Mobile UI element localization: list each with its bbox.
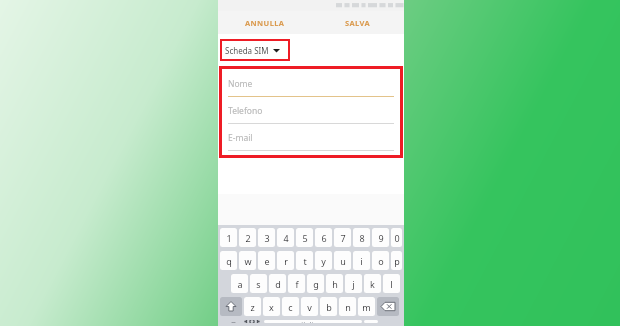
button[interactable]: 3 — [258, 228, 275, 247]
button[interactable]: 2 — [239, 228, 256, 247]
staticText: c — [288, 301, 293, 313]
button[interactable]: Nome — [228, 71, 394, 97]
button[interactable]: r — [277, 251, 294, 270]
staticText: !#☺ — [223, 320, 238, 323]
staticText: p — [394, 255, 400, 267]
staticText: k — [370, 278, 375, 290]
staticText: j — [352, 278, 355, 290]
button[interactable]: ANNULLA — [218, 11, 311, 34]
button[interactable]: 0 — [391, 228, 402, 247]
button[interactable]: d — [269, 274, 286, 293]
button[interactable]: x — [263, 297, 280, 316]
staticText: E-mail — [228, 132, 253, 144]
staticText: 0 — [394, 232, 400, 244]
button[interactable]: n — [339, 297, 356, 316]
staticText: g — [313, 278, 319, 290]
button[interactable]: t — [296, 251, 313, 270]
staticText: italiano — [301, 320, 326, 323]
staticText: z — [250, 301, 255, 313]
staticText: r — [284, 255, 288, 267]
staticText: Telefono — [228, 105, 263, 117]
staticText: f — [295, 278, 299, 290]
button[interactable]: j — [345, 274, 362, 293]
button[interactable]: k — [364, 274, 381, 293]
button[interactable]: o — [372, 251, 389, 270]
button[interactable]: Settings — [242, 320, 262, 323]
button[interactable]: E-mail — [228, 125, 394, 151]
button[interactable]: 9 — [372, 228, 389, 247]
button[interactable]: h — [326, 274, 343, 293]
button[interactable]: 4 — [277, 228, 294, 247]
button[interactable]: 6 — [315, 228, 332, 247]
staticText: Nome — [228, 78, 253, 90]
staticText: 2 — [245, 232, 251, 244]
button[interactable]: Symbols — [220, 320, 240, 323]
staticText: y — [321, 255, 326, 267]
staticText: 8 — [359, 232, 365, 244]
button[interactable]: Shift — [220, 297, 242, 316]
staticText: h — [332, 278, 338, 290]
button[interactable]: m — [358, 297, 375, 316]
staticText: 5 — [302, 232, 308, 244]
staticText: 9 — [378, 232, 384, 244]
button[interactable]: c — [282, 297, 299, 316]
staticText: 6 — [321, 232, 327, 244]
button[interactable]: u — [334, 251, 351, 270]
staticText: q — [226, 255, 232, 267]
button[interactable]: y — [315, 251, 332, 270]
button[interactable]: . — [364, 320, 378, 323]
staticText: i — [360, 255, 363, 267]
button[interactable]: 1 — [220, 228, 237, 247]
staticText: 4 — [283, 232, 289, 244]
button[interactable]: g — [307, 274, 324, 293]
button[interactable]: 7 — [334, 228, 351, 247]
button[interactable]: SALVA — [311, 11, 404, 34]
button[interactable]: l — [383, 274, 400, 293]
staticText: t — [303, 255, 307, 267]
staticText: d — [275, 278, 281, 290]
staticText: m — [362, 301, 371, 313]
staticText: 1 — [226, 232, 232, 244]
staticText: w — [244, 255, 252, 267]
staticText: l — [390, 278, 393, 290]
button[interactable]: i — [353, 251, 370, 270]
staticText: u — [340, 255, 346, 267]
button[interactable]: z — [244, 297, 261, 316]
staticText: n — [345, 301, 351, 313]
button[interactable]: p — [391, 251, 402, 270]
staticText: Scheda SIM — [225, 45, 269, 56]
staticText: b — [326, 301, 332, 313]
button[interactable]: Backspace — [377, 297, 399, 316]
staticText: 3 — [264, 232, 270, 244]
button[interactable]: q — [220, 251, 237, 270]
staticText: SALVA — [345, 18, 371, 28]
button[interactable]: italiano — [264, 320, 362, 323]
button[interactable]: e — [258, 251, 275, 270]
button[interactable]: f — [288, 274, 305, 293]
button[interactable]: 8 — [353, 228, 370, 247]
staticText: v — [307, 301, 312, 313]
button[interactable]: b — [320, 297, 337, 316]
button[interactable]: w — [239, 251, 256, 270]
button[interactable]: 5 — [296, 228, 313, 247]
button[interactable]: Telefono — [228, 98, 394, 124]
staticText: s — [256, 278, 261, 290]
staticText: e — [264, 255, 270, 267]
button[interactable]: Scheda SIM — [220, 39, 290, 61]
staticText: 7 — [340, 232, 346, 244]
staticText: o — [378, 255, 384, 267]
button[interactable]: v — [301, 297, 318, 316]
staticText: x — [269, 301, 274, 313]
button[interactable]: a — [231, 274, 248, 293]
staticText: ANNULLA — [245, 18, 285, 28]
staticText: a — [237, 278, 243, 290]
button[interactable]: s — [250, 274, 267, 293]
